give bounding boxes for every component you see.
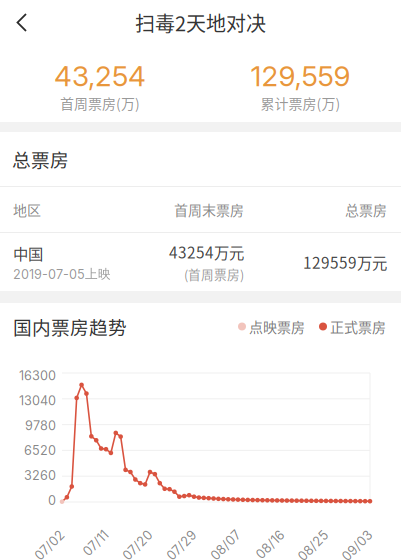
staticText: 首周票房(万) <box>60 93 140 113</box>
staticText: 点映票房 <box>249 316 305 337</box>
staticText: (首周票房) <box>184 265 244 283</box>
staticText: 09/03 <box>341 543 378 559</box>
staticText: 07/11 <box>84 543 114 559</box>
staticText: 正式票房 <box>330 316 386 337</box>
staticText: 129,559 <box>250 59 350 93</box>
staticText: 07/02 <box>34 543 70 559</box>
staticText: 43,254 <box>54 59 146 93</box>
staticText: 总票房 <box>345 199 387 220</box>
staticText: 08/25 <box>297 543 334 559</box>
button[interactable]: Back <box>0 0 44 44</box>
staticText: 0 <box>48 493 56 508</box>
staticText: 国内票房趋势 <box>13 313 127 340</box>
staticText: 43254万元 <box>169 241 244 263</box>
staticText: 6520 <box>24 443 56 458</box>
staticText: 地区 <box>13 199 41 220</box>
staticText: 13040 <box>19 393 56 408</box>
staticText: 3260 <box>24 468 56 483</box>
staticText: 129559万元 <box>303 251 387 273</box>
staticText: 08/16 <box>256 543 290 559</box>
staticText: 08/07 <box>210 543 246 559</box>
staticText: 9780 <box>25 418 56 433</box>
staticText: 扫毒2天地对决 <box>135 8 266 37</box>
staticText: 总票房 <box>12 145 69 172</box>
staticText: 16300 <box>19 368 56 383</box>
staticText: 累计票房(万) <box>260 93 340 113</box>
staticText: 07/29 <box>166 543 202 559</box>
staticText: 中国 <box>13 242 43 264</box>
staticText: 07/20 <box>122 543 158 559</box>
staticText: 首周末票房 <box>174 199 244 220</box>
staticText: 2019-07-05上映 <box>13 266 111 282</box>
